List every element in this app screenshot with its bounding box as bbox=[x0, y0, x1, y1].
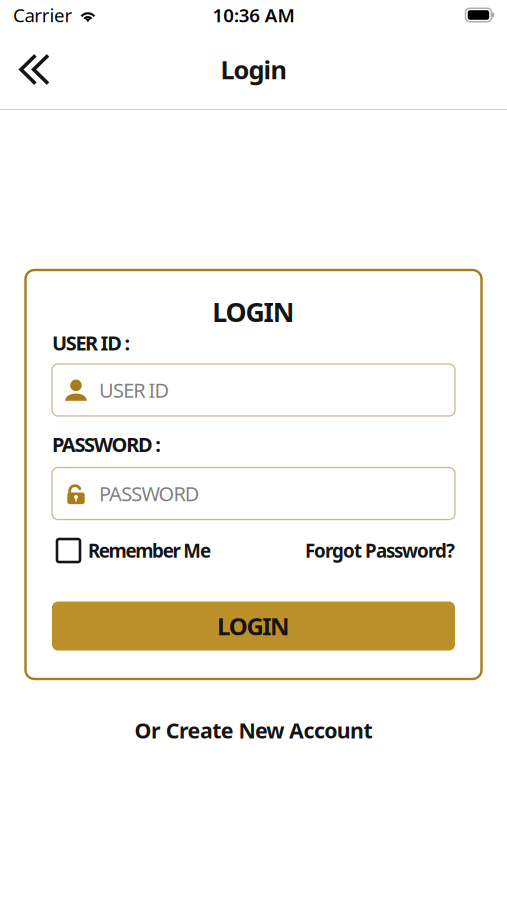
button[interactable]: Back bbox=[0, 39, 62, 99]
staticText: USER ID : bbox=[52, 329, 131, 356]
staticText: PASSWORD : bbox=[52, 431, 161, 458]
staticText: Login bbox=[220, 53, 286, 86]
button[interactable]: Or Create New Account bbox=[120, 708, 386, 752]
button[interactable]: Forgot Password? bbox=[305, 538, 455, 563]
staticText: Carrier bbox=[13, 3, 73, 27]
staticText: 10:36 AM bbox=[212, 3, 294, 27]
staticText: USER ID bbox=[99, 377, 170, 403]
button[interactable]: Remember Me bbox=[52, 538, 211, 563]
staticText: Remember Me bbox=[88, 538, 211, 563]
staticText: PASSWORD bbox=[99, 480, 200, 507]
staticText: LOGIN bbox=[212, 294, 295, 329]
staticText: Or Create New Account bbox=[134, 716, 372, 744]
button[interactable]: LOGIN bbox=[52, 601, 455, 650]
staticText: LOGIN bbox=[217, 610, 290, 642]
staticText: Forgot Password? bbox=[305, 538, 455, 563]
